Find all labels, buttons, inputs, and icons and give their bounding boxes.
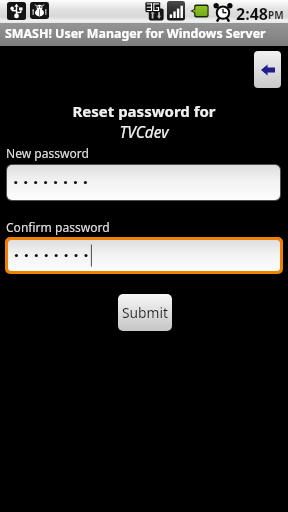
button[interactable]: Submit	[118, 294, 172, 331]
staticText: 2:48	[236, 3, 268, 25]
button[interactable]	[7, 165, 280, 200]
button[interactable]: Back	[254, 51, 281, 88]
staticText: TVCdev	[0, 121, 288, 142]
staticText: PM	[268, 8, 284, 22]
staticText: New password	[6, 145, 89, 161]
staticText: Reset password for	[0, 101, 288, 121]
staticText: SMASH! User Manager for Windows Server	[5, 25, 266, 42]
button[interactable]	[8, 240, 280, 271]
staticText: Submit	[122, 303, 169, 322]
staticText: Confirm password	[6, 219, 110, 235]
